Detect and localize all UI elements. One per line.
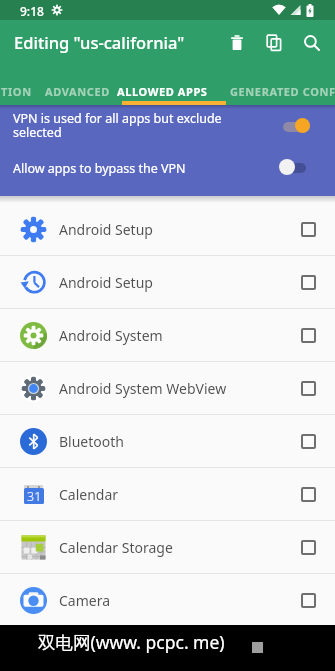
staticText: VPN is used for all apps but exclude sel…	[13, 110, 222, 140]
staticText: Android System	[59, 326, 163, 345]
button[interactable]: Allow apps to bypass the VPN	[0, 151, 335, 196]
staticText: 9:18	[20, 3, 44, 19]
staticText: Android Setup	[59, 273, 153, 292]
button[interactable]: Bluetooth	[0, 415, 335, 468]
staticText: Camera	[59, 591, 111, 610]
button[interactable]: TION	[1, 84, 32, 99]
staticText: Calendar	[59, 485, 119, 504]
button[interactable]: 31	[0, 468, 335, 521]
button[interactable]: Android System	[0, 309, 335, 362]
staticText: 31	[27, 488, 42, 504]
button[interactable]: GENERATED CONFIG	[230, 84, 335, 99]
button[interactable]	[226, 32, 248, 54]
staticText: Android System WebView	[59, 379, 227, 398]
staticText: Calendar Storage	[59, 538, 173, 557]
button[interactable]: ADVANCED	[45, 84, 110, 99]
button[interactable]: Camera	[0, 574, 335, 627]
button[interactable]: Android System WebView	[0, 362, 335, 415]
staticText: Bluetooth	[59, 432, 124, 451]
staticText: 双电网(www. pcpc. me)	[38, 630, 225, 654]
button[interactable]: ALLOWED APPS	[117, 84, 208, 99]
staticText: Editing "us-california"	[14, 31, 185, 53]
staticText: Android Setup	[59, 220, 153, 239]
button[interactable]: Android Setup	[0, 203, 335, 256]
staticText: Allow apps to bypass the VPN	[13, 160, 186, 177]
button[interactable]: Android Setup	[0, 256, 335, 309]
button[interactable]	[301, 32, 323, 54]
button[interactable]	[263, 32, 285, 54]
button[interactable]: Calendar Storage	[0, 521, 335, 574]
button[interactable]: VPN is used for all apps but exclude sel…	[0, 105, 335, 151]
